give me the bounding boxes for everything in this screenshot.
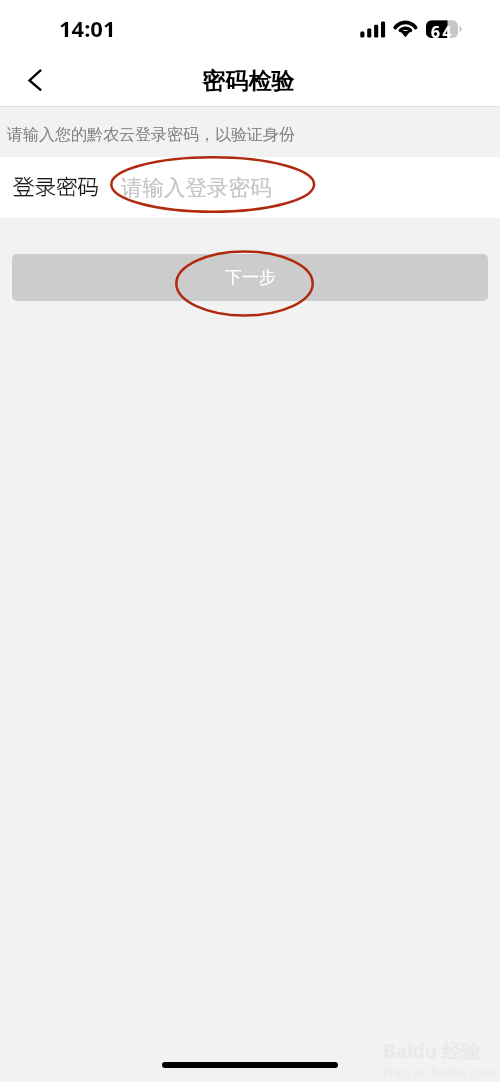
button[interactable]: 登录密码 <box>0 157 500 218</box>
staticText: Baidu 经验 <box>383 1038 480 1064</box>
staticText: 64 <box>431 21 454 38</box>
staticText: 密码检验 <box>202 67 294 96</box>
other: Cellular signal <box>360 21 386 38</box>
staticText: 请输入登录密码 <box>121 174 272 201</box>
staticText: 下一步 <box>225 267 276 288</box>
button[interactable]: Back <box>8 57 56 105</box>
button[interactable]: 下一步 <box>12 254 488 301</box>
other: Battery 64 percent <box>426 20 463 38</box>
other: Wi-Fi <box>393 19 418 38</box>
staticText: 请输入您的黔农云登录密码，以验证身份 <box>7 125 295 145</box>
staticText: 登录密码 <box>13 170 100 201</box>
staticText: 14:01 <box>59 13 116 43</box>
